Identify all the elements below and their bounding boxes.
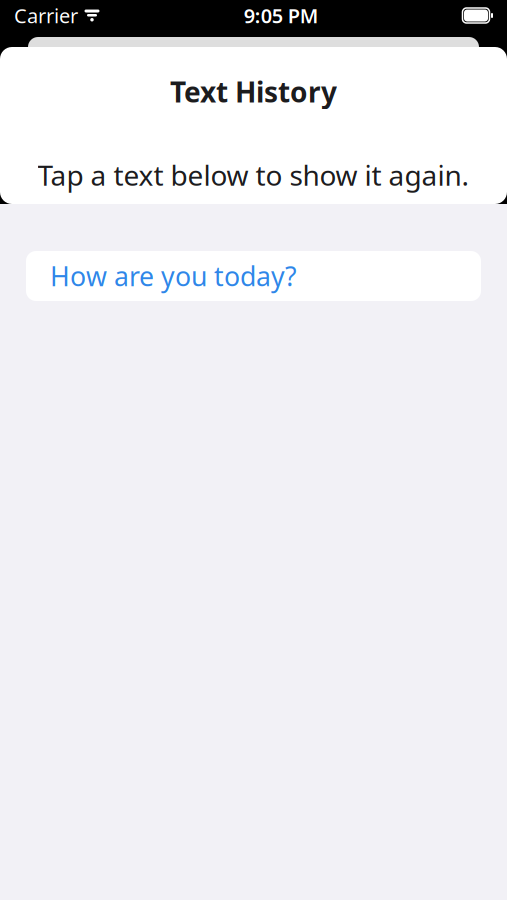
button[interactable]: How are you today? bbox=[26, 251, 481, 301]
staticText: Tap a text below to show it again. bbox=[37, 156, 469, 193]
staticText: Text History bbox=[170, 73, 337, 110]
staticText: Carrier bbox=[14, 2, 78, 29]
staticText: 9:05 PM bbox=[244, 2, 319, 29]
staticText: How are you today? bbox=[50, 258, 297, 294]
